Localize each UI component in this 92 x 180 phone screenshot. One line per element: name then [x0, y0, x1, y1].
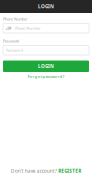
- button[interactable]: Don't have account?: [3, 168, 89, 174]
- staticText: Password: [5, 47, 22, 53]
- staticText: +91: [5, 25, 11, 31]
- button[interactable]: Forgot password?: [3, 73, 89, 79]
- staticText: REGISTER: [58, 168, 81, 174]
- staticText: LOGIN: [38, 3, 54, 10]
- button[interactable]: LOGIN: [3, 60, 89, 72]
- staticText: Phone Number: [3, 16, 28, 22]
- staticText: Forgot password?: [27, 74, 64, 79]
- staticText: Don't have account?: [11, 168, 57, 174]
- staticText: Password: [3, 38, 19, 44]
- staticText: LOGIN: [38, 63, 54, 69]
- staticText: Phone Number: [15, 25, 41, 31]
